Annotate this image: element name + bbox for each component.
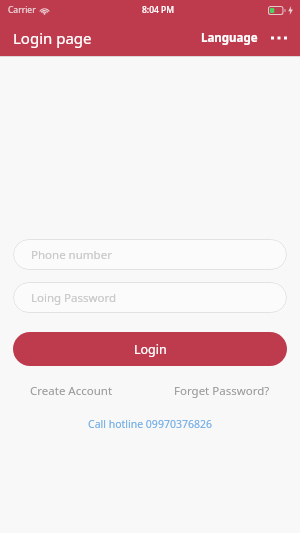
button[interactable]: Create Account	[26, 380, 117, 402]
button[interactable]: Forget Password?	[170, 380, 274, 402]
staticText: Login page	[13, 28, 92, 48]
staticText: Login	[134, 341, 167, 358]
button[interactable]: Phone number	[13, 239, 287, 270]
button[interactable]: Call hotline 09970376826	[82, 414, 218, 434]
staticText: Forget Password?	[174, 383, 270, 399]
button[interactable]: Language	[197, 26, 262, 50]
button[interactable]: Loing Password	[13, 282, 287, 313]
staticText: Phone number	[31, 247, 112, 263]
staticText: Carrier	[8, 4, 36, 16]
button[interactable]: More options	[268, 27, 290, 49]
staticText: Language	[201, 30, 258, 46]
button[interactable]: Login	[13, 332, 287, 366]
staticText: 8:04 PM	[142, 4, 175, 16]
staticText: Create Account	[30, 383, 113, 399]
staticText: Call hotline 09970376826	[88, 417, 212, 431]
staticText: Loing Password	[31, 290, 117, 306]
